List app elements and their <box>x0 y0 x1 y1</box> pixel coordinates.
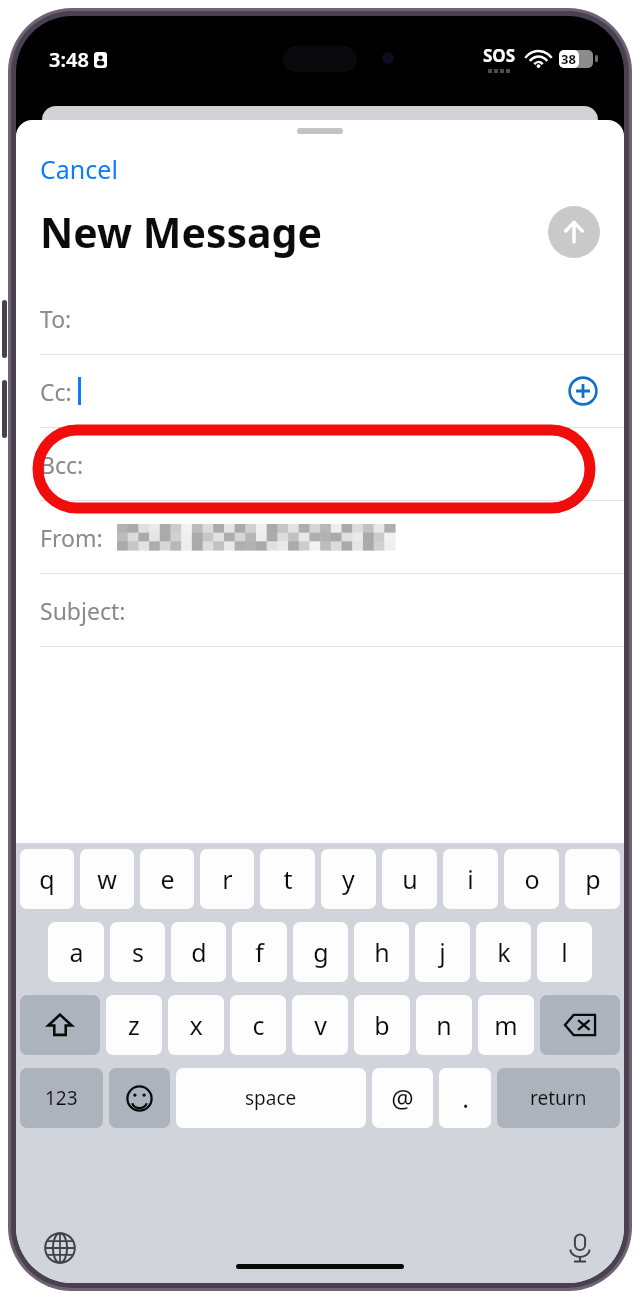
staticText: @ <box>391 1081 414 1115</box>
staticText: Cancel <box>40 152 118 186</box>
button[interactable]: d <box>171 922 226 982</box>
staticText: . <box>462 1081 469 1115</box>
button[interactable]: Bcc: <box>16 428 624 500</box>
button[interactable]: Dictation <box>558 1226 602 1270</box>
staticText: i <box>467 862 474 896</box>
button[interactable]: space <box>176 1068 366 1128</box>
button[interactable]: return <box>497 1068 620 1128</box>
button[interactable]: Cancel <box>36 148 122 190</box>
button[interactable]: u <box>382 849 437 909</box>
staticText: w <box>97 862 117 896</box>
button[interactable]: x <box>168 995 224 1055</box>
staticText: b <box>374 1008 390 1042</box>
button[interactable]: z <box>106 995 162 1055</box>
button[interactable]: a <box>48 922 104 982</box>
staticText: To: <box>40 303 72 334</box>
staticText: c <box>252 1008 265 1042</box>
button[interactable]: Add contact <box>566 374 600 408</box>
staticText: t <box>283 862 293 896</box>
staticText: v <box>314 1008 327 1042</box>
button[interactable]: g <box>293 922 348 982</box>
staticText: m <box>494 1008 518 1042</box>
staticText: Bcc: <box>40 449 84 480</box>
staticText: e <box>160 862 175 896</box>
staticText: g <box>313 935 329 969</box>
button[interactable]: m <box>478 995 534 1055</box>
staticText: From: <box>40 522 103 553</box>
button[interactable]: Backspace <box>540 995 620 1055</box>
button[interactable]: j <box>415 922 470 982</box>
button[interactable]: Switch keyboard <box>38 1226 82 1270</box>
staticText: s <box>132 935 144 969</box>
button[interactable]: c <box>230 995 286 1055</box>
button[interactable]: k <box>476 922 531 982</box>
staticText: 123 <box>45 1085 78 1111</box>
staticText: p <box>585 862 601 896</box>
button[interactable]: 123 <box>20 1068 103 1128</box>
staticText: n <box>436 1008 452 1042</box>
staticText: y <box>342 862 355 896</box>
button[interactable]: i <box>443 849 498 909</box>
button[interactable]: s <box>110 922 165 982</box>
button[interactable]: n <box>416 995 472 1055</box>
button[interactable]: t <box>260 849 315 909</box>
staticText: SOS <box>483 44 516 67</box>
button[interactable]: @ <box>372 1068 433 1128</box>
button[interactable]: Emoji <box>109 1068 170 1128</box>
staticText: New Message <box>40 204 322 260</box>
button[interactable]: To: <box>16 282 624 354</box>
button[interactable]: w <box>80 849 134 909</box>
staticText: q <box>39 862 55 896</box>
button[interactable]: b <box>354 995 410 1055</box>
staticText: j <box>439 935 446 969</box>
button[interactable]: v <box>292 995 348 1055</box>
staticText: k <box>497 935 511 969</box>
staticText: z <box>128 1008 140 1042</box>
staticText: x <box>189 1008 203 1042</box>
button[interactable]: From: <box>16 501 624 573</box>
staticText: o <box>524 862 540 896</box>
staticText: r <box>222 862 233 896</box>
button[interactable]: r <box>200 849 254 909</box>
button[interactable]: e <box>140 849 194 909</box>
button[interactable]: o <box>504 849 559 909</box>
staticText: l <box>561 935 568 969</box>
button[interactable]: Cc: <box>16 355 624 427</box>
staticText: 3:48 <box>49 46 89 73</box>
button[interactable]: Send <box>548 206 600 258</box>
button[interactable]: . <box>439 1068 491 1128</box>
staticText: Cc: <box>40 376 72 407</box>
staticText: f <box>255 935 264 969</box>
button[interactable]: Shift <box>20 995 100 1055</box>
button[interactable]: Subject: <box>16 574 624 646</box>
button[interactable]: y <box>321 849 376 909</box>
button[interactable]: h <box>354 922 409 982</box>
button[interactable]: l <box>537 922 592 982</box>
button[interactable]: q <box>20 849 74 909</box>
button[interactable]: p <box>565 849 620 909</box>
staticText: return <box>530 1085 587 1111</box>
button[interactable]: f <box>232 922 287 982</box>
staticText: Subject: <box>40 595 126 626</box>
staticText: d <box>191 935 207 969</box>
staticText: 38 <box>561 50 576 68</box>
staticText: a <box>69 935 84 969</box>
staticText: space <box>245 1085 297 1111</box>
staticText: h <box>374 935 390 969</box>
staticText: u <box>402 862 418 896</box>
